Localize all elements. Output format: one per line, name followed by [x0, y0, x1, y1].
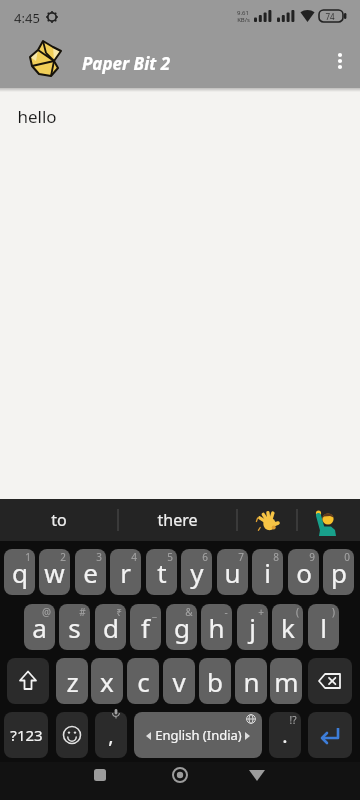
button[interactable]: e: [75, 549, 106, 595]
staticText: -: [224, 605, 228, 619]
staticText: (: [296, 605, 299, 619]
staticText: Paper Bit 2: [82, 52, 170, 75]
staticText: English (India): [155, 726, 242, 744]
staticText: 3: [96, 550, 102, 564]
button[interactable]: k: [272, 604, 303, 650]
staticText: w: [44, 555, 65, 590]
button[interactable]: q: [4, 549, 35, 595]
button[interactable]: ?123: [4, 712, 48, 758]
staticText: p: [331, 555, 347, 590]
staticText: t: [157, 555, 167, 590]
button[interactable]: i: [252, 549, 283, 595]
button[interactable]: t: [146, 549, 177, 595]
button[interactable]: [297, 499, 360, 541]
staticText: +: [258, 605, 264, 619]
button[interactable]: f: [130, 604, 161, 650]
staticText: q: [12, 555, 28, 590]
staticText: m: [274, 664, 299, 699]
button[interactable]: .: [269, 712, 301, 758]
staticText: ,: [108, 722, 114, 749]
button[interactable]: d: [95, 604, 126, 650]
staticText: ): [332, 605, 335, 619]
button[interactable]: [7, 658, 49, 704]
button[interactable]: g: [166, 604, 197, 650]
button[interactable]: s: [59, 604, 90, 650]
staticText: x: [100, 664, 114, 699]
button[interactable]: [80, 762, 120, 800]
button[interactable]: [237, 499, 297, 541]
button[interactable]: [237, 762, 277, 800]
staticText: !?: [289, 713, 297, 727]
staticText: 74: [325, 11, 335, 22]
button[interactable]: c: [127, 658, 159, 704]
button[interactable]: ,: [95, 712, 127, 758]
staticText: 1: [25, 550, 31, 564]
staticText: v: [172, 664, 186, 699]
staticText: .: [282, 722, 288, 749]
button[interactable]: x: [91, 658, 123, 704]
button[interactable]: z: [56, 658, 88, 704]
staticText: k: [281, 610, 295, 645]
staticText: r: [120, 555, 131, 590]
button[interactable]: [330, 49, 350, 73]
button[interactable]: w: [39, 549, 70, 595]
staticText: ₹: [116, 605, 122, 619]
staticText: 9: [309, 550, 315, 564]
staticText: o: [296, 555, 312, 590]
staticText: d: [103, 610, 119, 645]
staticText: &: [185, 605, 193, 619]
staticText: l: [320, 610, 327, 645]
staticText: f: [141, 610, 150, 645]
staticText: 7: [238, 550, 244, 564]
button[interactable]: l: [308, 604, 339, 650]
staticText: h: [208, 610, 225, 645]
staticText: 2: [60, 550, 66, 564]
staticText: u: [224, 555, 241, 590]
staticText: b: [207, 664, 223, 699]
staticText: j: [249, 610, 256, 645]
button[interactable]: r: [110, 549, 141, 595]
staticText: 4:45: [14, 9, 40, 27]
button[interactable]: [308, 658, 352, 704]
staticText: i: [264, 555, 271, 590]
staticText: 9.61: [237, 9, 249, 17]
staticText: n: [243, 664, 260, 699]
button[interactable]: u: [217, 549, 248, 595]
button[interactable]: n: [235, 658, 267, 704]
staticText: 4: [131, 550, 137, 564]
button[interactable]: j: [237, 604, 268, 650]
button[interactable]: to: [0, 499, 118, 541]
staticText: c: [137, 664, 150, 699]
button[interactable]: [308, 712, 352, 758]
button[interactable]: m: [270, 658, 302, 704]
button[interactable]: b: [199, 658, 231, 704]
staticText: hello: [17, 105, 57, 128]
staticText: z: [66, 664, 79, 699]
staticText: y: [190, 555, 204, 590]
staticText: ?123: [10, 725, 43, 745]
staticText: a: [32, 610, 47, 645]
button[interactable]: y: [181, 549, 212, 595]
button[interactable]: a: [24, 604, 55, 650]
staticText: there: [157, 509, 198, 531]
staticText: 5: [167, 550, 173, 564]
button[interactable]: [134, 712, 262, 758]
button[interactable]: v: [163, 658, 195, 704]
staticText: 0: [344, 550, 350, 564]
staticText: @: [42, 605, 51, 619]
button[interactable]: [160, 762, 200, 800]
staticText: e: [83, 555, 98, 590]
staticText: _: [152, 605, 157, 619]
staticText: s: [68, 610, 81, 645]
button[interactable]: there: [118, 499, 237, 541]
button[interactable]: [56, 712, 88, 758]
staticText: #: [79, 605, 86, 619]
staticText: to: [51, 509, 67, 531]
staticText: 6: [202, 550, 208, 564]
button[interactable]: [30, 41, 63, 78]
button[interactable]: p: [323, 549, 354, 595]
button[interactable]: o: [288, 549, 319, 595]
button[interactable]: h: [201, 604, 232, 650]
staticText: g: [174, 610, 190, 645]
staticText: 8: [273, 550, 279, 564]
